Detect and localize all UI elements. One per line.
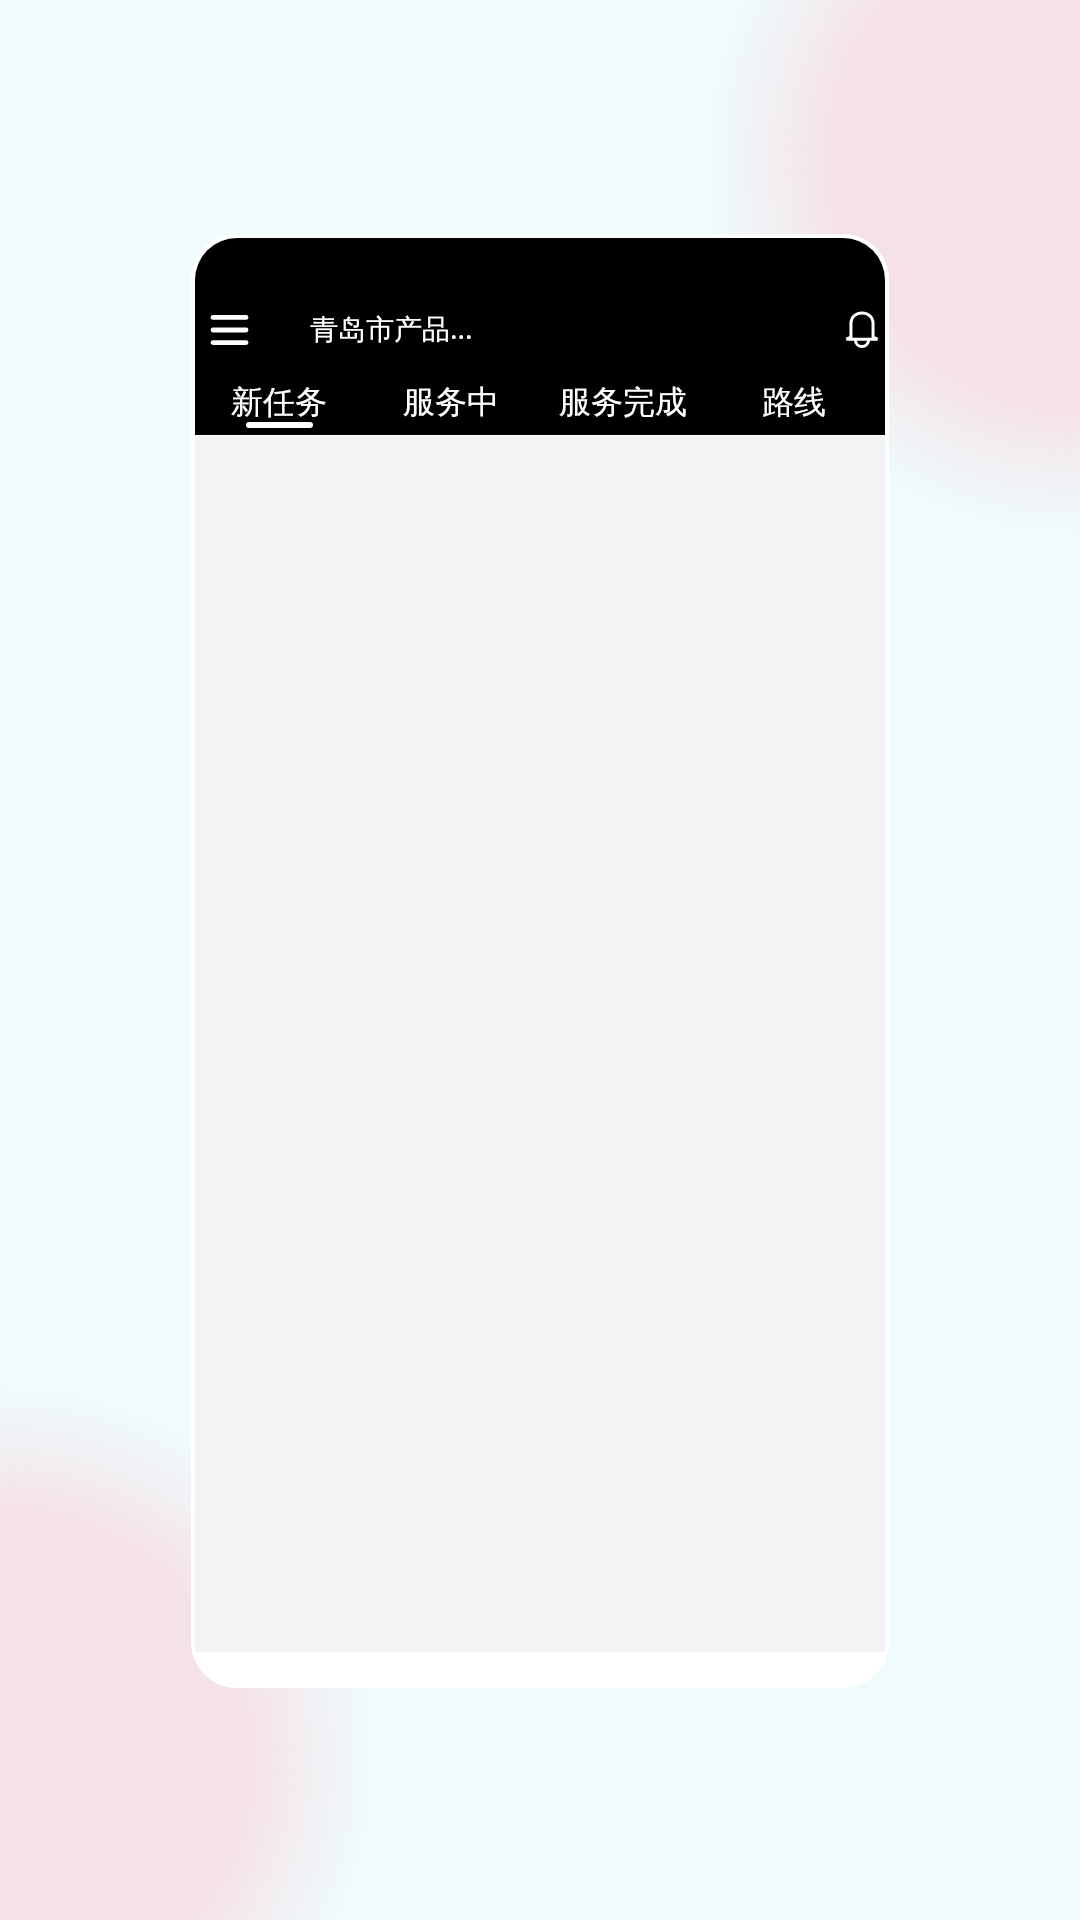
button[interactable]: Open navigation menu xyxy=(204,305,254,355)
staticText: 路线 xyxy=(762,382,826,422)
button[interactable]: 服务中 xyxy=(366,379,536,435)
staticText: 服务完成 xyxy=(559,382,687,422)
button[interactable]: Notifications xyxy=(832,299,885,360)
staticText: 服务中 xyxy=(403,382,499,422)
staticText: 新任务 xyxy=(231,382,327,422)
button[interactable]: 路线 xyxy=(709,379,879,435)
button[interactable]: 服务完成 xyxy=(538,379,708,435)
button[interactable]: 青岛市产品... xyxy=(310,301,473,355)
staticText: 青岛市产品... xyxy=(310,309,473,347)
button[interactable]: 新任务 xyxy=(195,379,364,435)
